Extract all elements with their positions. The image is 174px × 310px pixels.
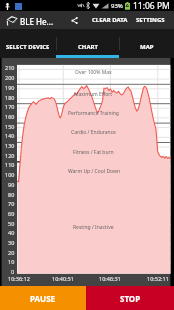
staticText: 150 [5, 123, 15, 130]
staticText: 10:46:31 [99, 275, 121, 282]
staticText: 93% [111, 2, 123, 10]
staticText: 190 [5, 84, 15, 91]
staticText: 170 [5, 103, 15, 110]
button[interactable]: STOP [86, 286, 174, 310]
staticText: 110 [5, 161, 15, 168]
staticText: 200 [5, 74, 15, 81]
staticText: MAP [140, 43, 154, 51]
button[interactable]: CLEAR DATA [88, 11, 132, 29]
button[interactable]: CHART [56, 29, 119, 58]
button[interactable]: MAP [119, 29, 174, 58]
staticText: 10:52:11 [147, 275, 169, 282]
staticText: Warm Up / Cool Down [68, 168, 120, 175]
staticText: 11:06 PM [133, 0, 170, 11]
staticText: 160 [5, 113, 15, 120]
staticText: 90 [8, 181, 15, 188]
button[interactable]: Share [68, 14, 80, 26]
staticText: 50 [8, 220, 15, 227]
staticText: PAUSE [30, 293, 56, 304]
staticText: Cardio / Endurance [71, 129, 116, 136]
staticText: 210 [5, 64, 15, 71]
staticText: 10 [8, 258, 15, 265]
staticText: 70 [8, 200, 15, 207]
staticText: Performance Training [68, 110, 119, 117]
staticText: 30 [8, 239, 15, 246]
staticText: Resting / Inactive [73, 224, 114, 231]
staticText: 130 [5, 142, 15, 149]
staticText: 0 [11, 268, 15, 275]
staticText: STOP [120, 293, 141, 304]
staticText: 80 [8, 191, 15, 198]
staticText: 140 [5, 132, 15, 139]
staticText: 40 [8, 229, 15, 236]
staticText: CHART [78, 43, 98, 51]
button[interactable]: SELECT DEVICE [0, 29, 56, 58]
staticText: Over 100% Max [75, 69, 112, 76]
staticText: 180 [5, 94, 15, 101]
staticText: Maximum Effort [74, 91, 113, 98]
staticText: 60 [8, 210, 15, 217]
staticText: SETTINGS [136, 16, 165, 24]
staticText: 10:40:51 [52, 275, 74, 282]
staticText: 10:36:12 [8, 275, 30, 282]
button[interactable]: PAUSE [0, 286, 86, 310]
button[interactable]: SETTINGS [132, 11, 169, 29]
staticText: 120 [5, 152, 15, 159]
staticText: BLE He... [20, 16, 54, 27]
staticText: 20 [8, 249, 15, 256]
staticText: 100 [5, 171, 15, 178]
staticText: Fitness / Fat burn [73, 149, 114, 156]
staticText: SELECT DEVICE [6, 43, 50, 51]
staticText: CLEAR DATA [92, 16, 128, 24]
